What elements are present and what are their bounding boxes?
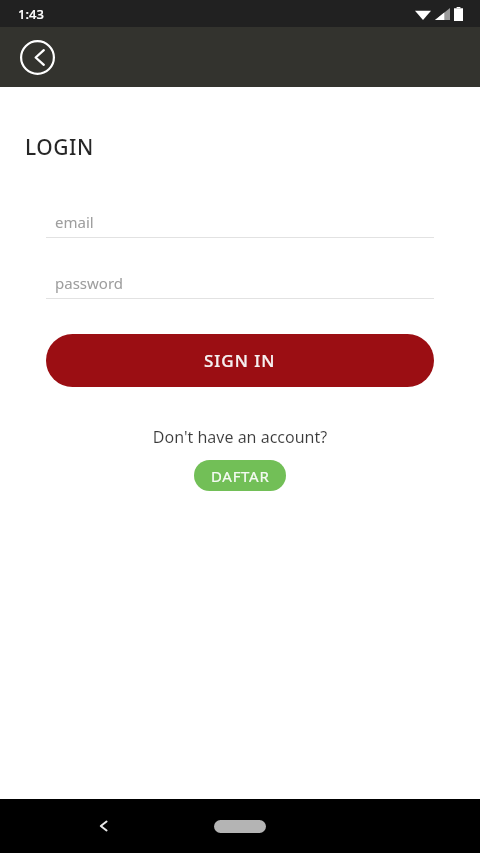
staticText: 1:43	[18, 5, 44, 23]
button[interactable]: Back	[13, 33, 61, 81]
button[interactable]: email	[46, 207, 434, 238]
staticText: email	[55, 212, 94, 232]
button[interactable]: DAFTAR	[194, 460, 286, 491]
staticText: Don't have an account?	[0, 426, 480, 448]
staticText: SIGN IN	[204, 349, 276, 372]
button[interactable]: Home	[206, 809, 274, 843]
staticText: password	[55, 273, 123, 293]
staticText: DAFTAR	[211, 466, 270, 486]
button[interactable]: password	[46, 268, 434, 299]
button[interactable]: SIGN IN	[46, 334, 434, 387]
staticText: LOGIN	[25, 133, 94, 162]
button[interactable]: Back	[84, 806, 124, 846]
